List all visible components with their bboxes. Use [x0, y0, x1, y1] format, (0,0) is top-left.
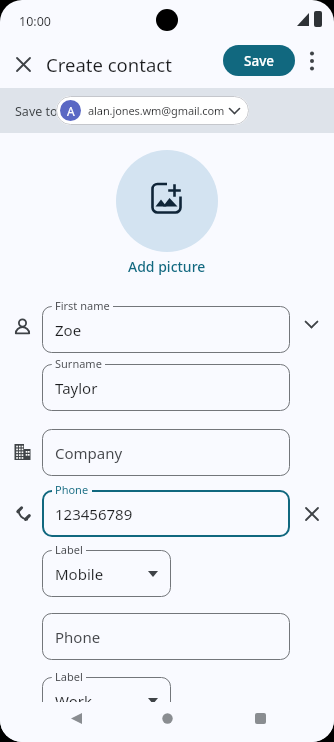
button[interactable] [153, 704, 181, 732]
button[interactable] [299, 501, 324, 526]
staticText: 123456789 [55, 504, 133, 524]
staticText: Phone [55, 482, 89, 497]
staticText: Taylor [55, 378, 98, 398]
button[interactable]: Company [42, 429, 290, 476]
button[interactable]: Phone [42, 613, 290, 660]
staticText: A [67, 103, 75, 119]
staticText: Zoe [55, 320, 82, 340]
button[interactable] [116, 150, 218, 252]
button[interactable]: Add picture [128, 257, 206, 276]
button[interactable] [300, 49, 324, 73]
button[interactable] [296, 312, 326, 336]
button[interactable]: Taylor [42, 364, 290, 411]
button[interactable]: A [56, 96, 249, 125]
button[interactable]: Save [223, 45, 295, 76]
button[interactable]: Work [42, 677, 171, 724]
staticText: Label [55, 669, 83, 684]
staticText: 10:00 [19, 13, 51, 30]
staticText: alan.jones.wm@gmail.com [88, 103, 225, 118]
staticText: Phone [55, 627, 101, 647]
staticText: Save to [15, 103, 58, 120]
staticText: Work [55, 691, 92, 711]
button[interactable] [62, 704, 90, 732]
button[interactable]: 123456789 [42, 490, 290, 537]
button[interactable] [10, 51, 36, 77]
staticText: Save [244, 52, 275, 70]
button[interactable]: Mobile [42, 550, 171, 597]
staticText: First name [55, 298, 110, 313]
staticText: Surname [55, 356, 102, 371]
button[interactable] [246, 704, 274, 732]
staticText: Company [55, 443, 123, 463]
staticText: Create contact [46, 52, 172, 77]
staticText: Label [55, 542, 83, 557]
button[interactable]: Zoe [42, 306, 290, 353]
staticText: Mobile [55, 564, 104, 584]
